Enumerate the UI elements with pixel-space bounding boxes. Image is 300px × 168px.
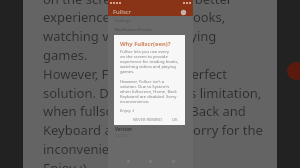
staticText: Fullscr lets you use every pixel (120, 49, 179, 55)
staticText: Settings (115, 18, 131, 23)
staticText: However, Fullscr isn't a perfect (43, 65, 227, 83)
staticText: inconvenience. (43, 140, 135, 158)
staticText: Keyboard are disabled. Sorry for the (43, 121, 263, 139)
staticText: inconvenience. (120, 99, 150, 105)
staticText: Enjoy :) (43, 159, 87, 168)
staticText: on the screen to provide better (120, 54, 179, 60)
staticText: Enjoy :) (120, 108, 135, 114)
staticText: watching videos and playing (120, 64, 176, 70)
button[interactable]: Settings (180, 9, 187, 16)
button[interactable]: Back (126, 159, 131, 164)
staticText: experience for reading books, (120, 59, 179, 65)
button[interactable]: NEVER REMIND (132, 116, 164, 123)
staticText: when fullscreen, Home, Back and (120, 89, 179, 95)
button[interactable]: Home (148, 159, 153, 164)
staticText: Notification Priority (115, 27, 152, 32)
staticText: solution. Due to System's limitation, (120, 84, 179, 90)
staticText: NEVER REMIND (133, 117, 163, 122)
staticText: watching videos and playing (43, 27, 217, 45)
staticText: experience for reading books, (43, 8, 226, 26)
button[interactable]: OK (171, 116, 179, 123)
staticText: 1.2.0.0 (115, 133, 128, 138)
staticText: Fullscr (113, 8, 132, 16)
staticText: OK (172, 117, 178, 122)
staticText: However, Fullscr isn't a perfect (120, 79, 179, 85)
staticText: on the screen to provide better (43, 0, 233, 8)
button[interactable]: Recents (171, 159, 176, 164)
staticText: games. (120, 69, 135, 75)
staticText: Keyboard are disabled. Sorry for the (120, 94, 179, 100)
staticText: games. (43, 46, 88, 64)
staticText: solution. Due to System's limitation, (43, 84, 262, 102)
staticText: Why Fullscr(een)? (120, 40, 171, 48)
staticText: Version (115, 126, 132, 132)
staticText: when fullscreen, Home, Back and (43, 102, 246, 120)
